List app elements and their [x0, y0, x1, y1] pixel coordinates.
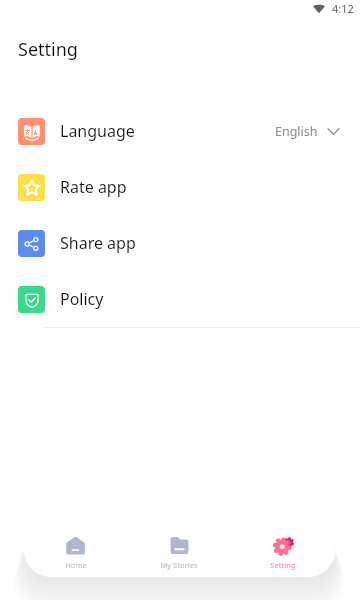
staticText: Setting — [270, 560, 296, 570]
button[interactable]: Setting — [231, 524, 335, 577]
staticText: Language — [60, 120, 135, 142]
button[interactable]: Rate app — [0, 159, 360, 215]
staticText: 4:12 — [332, 1, 354, 16]
staticText: Home — [65, 560, 87, 570]
button[interactable]: Share app — [0, 215, 360, 271]
staticText: Share app — [60, 232, 136, 254]
staticText: Rate app — [60, 176, 127, 198]
staticText: Setting — [18, 37, 78, 62]
button[interactable]: Policy — [0, 271, 360, 327]
button[interactable]: Language — [0, 103, 360, 159]
button[interactable]: Home — [24, 524, 127, 577]
staticText: English — [275, 123, 318, 140]
button[interactable]: My Stories — [127, 524, 231, 577]
staticText: Policy — [60, 288, 104, 310]
staticText: My Stories — [160, 560, 198, 570]
